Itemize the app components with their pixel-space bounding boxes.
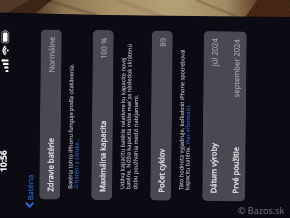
staticText: © Bazos.sk (238, 204, 285, 216)
staticText: Zdravie batérie (45, 137, 56, 192)
staticText: 10:56 (0, 150, 10, 172)
staticText: Prvé použitie (230, 146, 241, 193)
staticText: 89 (158, 38, 168, 47)
button[interactable]: Táto hodnota vyjadruje, koľkokrát iPhone… (177, 43, 193, 190)
button[interactable]: Maximálna kapacita (91, 30, 114, 200)
staticText: Normálne (46, 36, 57, 73)
staticText: Počet cyklov (156, 149, 167, 193)
button[interactable]: Udáva kapacitu batérie relatívne ku kapa… (118, 42, 141, 189)
button[interactable]: Dátum výroby (202, 31, 225, 201)
button[interactable]: Prvé použitie (224, 31, 247, 201)
staticText: Dátum výroby (208, 142, 219, 193)
staticText: september 2024 (231, 38, 242, 97)
staticText: júl 2024 (209, 38, 220, 66)
button[interactable]: Batéria tohto iPhonu funguje podľa očaká… (66, 42, 82, 189)
staticText: Maximálna kapacita (97, 120, 108, 192)
button[interactable]: Počet cyklov (150, 30, 173, 201)
button[interactable]: Zdravie batérie (39, 29, 62, 200)
staticText: Táto hodnota vyjadruje, koľkokrát iPhone… (177, 43, 193, 190)
staticText: Batéria (25, 174, 35, 200)
button[interactable]: Batéria (24, 172, 35, 210)
staticText: Udáva kapacitu batérie relatívne ku kapa… (118, 42, 141, 189)
staticText: Batéria tohto iPhonu funguje podľa očaká… (66, 64, 81, 189)
staticText: 100 % (98, 37, 109, 59)
